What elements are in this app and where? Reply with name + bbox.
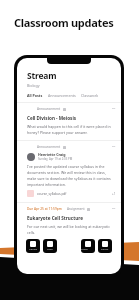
staticText: Biology <box>27 83 40 88</box>
staticText: Due Apr 25 at 11:59pm <box>27 207 62 211</box>
staticText: Stream <box>27 70 57 82</box>
staticText: Announcement <box>37 145 61 149</box>
staticText: Sunday, Apr 19 at 2:03 PM <box>38 157 73 161</box>
button[interactable]: Submit <box>98 239 112 253</box>
staticText: Eukaryote Cell Structure <box>27 215 83 221</box>
staticText: All Posts <box>27 93 43 98</box>
staticText: Announcements <box>48 93 76 98</box>
staticText: Submit <box>101 248 109 251</box>
staticText: Video <box>47 248 53 251</box>
staticText: Assignment <box>67 207 85 211</box>
button[interactable]: Screen Record <box>81 239 95 253</box>
staticText: Camera <box>29 248 37 251</box>
staticText: Announcement <box>37 107 61 111</box>
staticText: I've posted the updated course syllabus … <box>27 164 114 187</box>
button[interactable]: Camera <box>26 239 40 253</box>
staticText: Cell Division - Meiosis <box>27 115 77 121</box>
staticText: ••• <box>112 145 116 149</box>
staticText: Classwork <box>81 93 99 98</box>
staticText: Screen Record <box>81 248 95 251</box>
staticText: course_syllabus.pdf <box>37 192 67 196</box>
staticText: Henriette Craig <box>38 152 66 157</box>
staticText: Classroom updates <box>14 15 114 30</box>
staticText: ••• <box>112 107 116 111</box>
staticText: For our next unit, we will be looking at… <box>27 224 114 235</box>
staticText: +1 <box>112 192 116 196</box>
staticText: ••• <box>112 207 116 211</box>
button[interactable]: Video <box>43 239 57 253</box>
staticText: What would happen to this cell if it wer… <box>27 124 114 135</box>
